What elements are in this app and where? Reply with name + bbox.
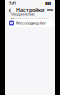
staticText: Мессенджер бот [16, 20, 46, 26]
staticText: Уведомления: Мессенджер активен [11, 11, 49, 22]
staticText: Настройки [16, 6, 44, 14]
staticText: 9:41 [9, 0, 16, 6]
staticText: ‹ [8, 5, 11, 15]
staticText: ▮▮▮ [45, 1, 51, 5]
button[interactable]: Back [7, 6, 13, 13]
button[interactable]: Мессенджер бот [7, 19, 53, 27]
